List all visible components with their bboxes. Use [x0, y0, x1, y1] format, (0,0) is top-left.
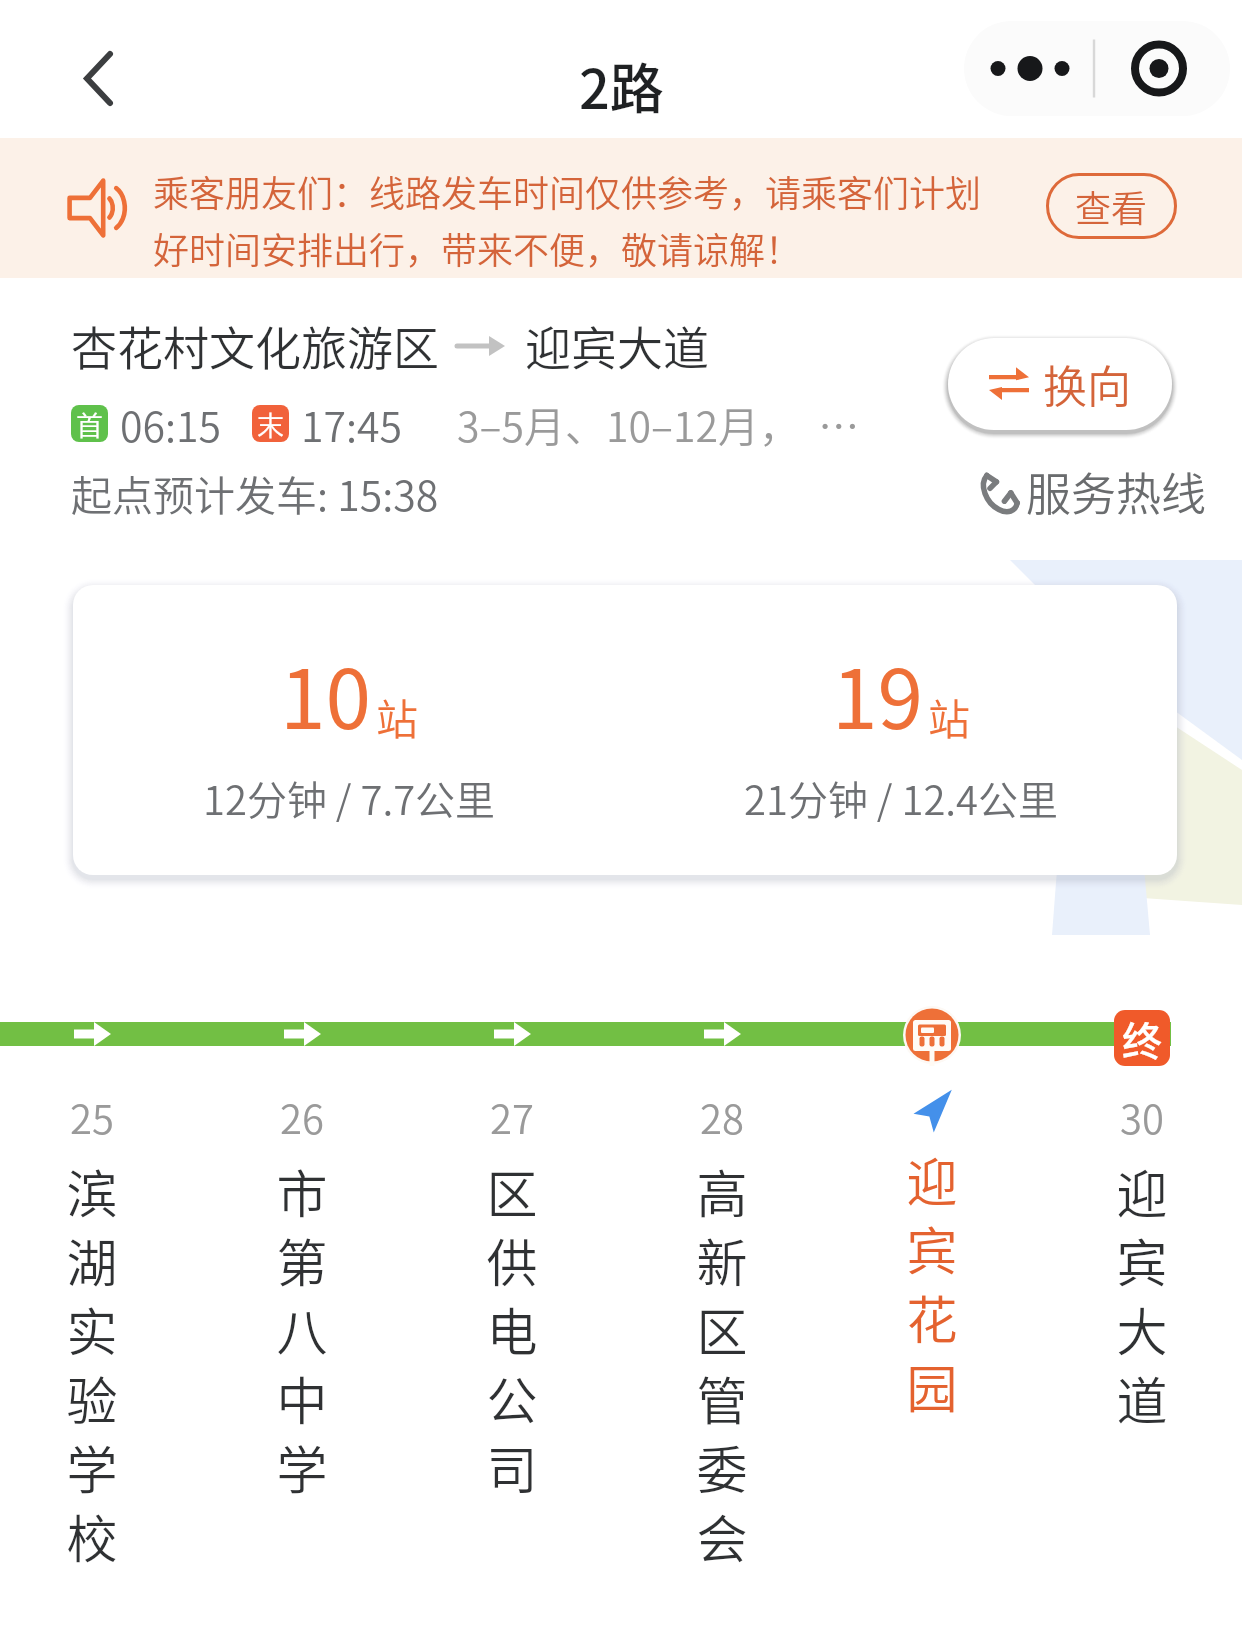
staticText: 乘客朋友们：线路发车时间仅供参考，请乘客们计划好时间安排出行，带来不便，敬请谅解… — [153, 165, 999, 275]
staticText: 19 — [832, 634, 924, 753]
staticText: 滨 湖 实 验 学 校 — [66, 1154, 118, 1573]
button[interactable]: Back — [62, 30, 134, 126]
staticText: 换向 — [1043, 352, 1131, 416]
staticText: 26 — [280, 1088, 324, 1146]
button[interactable]: 30 — [1042, 1088, 1242, 1435]
staticText: 28 — [700, 1088, 744, 1146]
staticText: 末 — [257, 405, 284, 442]
staticText: 2路 — [579, 46, 664, 124]
staticText: 迎 宾 大 道 — [1116, 1154, 1168, 1435]
staticText: 06:15 — [120, 394, 222, 453]
staticText: 查看 — [1075, 180, 1148, 232]
staticText: 21分钟 / 12.4公里 — [744, 769, 1059, 827]
button[interactable]: 26 — [202, 1088, 402, 1504]
staticText: 首 — [76, 405, 103, 442]
button[interactable]: 迎 宾 花 园 — [832, 1088, 1032, 1423]
button[interactable]: 19 — [625, 585, 1177, 875]
staticText: 10 — [280, 634, 372, 753]
staticText: 市 第 八 中 学 — [276, 1154, 328, 1504]
button[interactable]: 27 — [412, 1088, 612, 1504]
staticText: 3–5月、10–12月， … — [457, 394, 860, 453]
staticText: 27 — [490, 1088, 534, 1146]
button[interactable]: 25 — [0, 1088, 192, 1573]
staticText: 17:45 — [301, 394, 403, 453]
button[interactable]: 10 — [73, 585, 625, 875]
button[interactable]: 查看 — [1046, 173, 1177, 239]
staticText: 终 — [1122, 1010, 1162, 1066]
staticText: 25 — [70, 1088, 114, 1146]
staticText: 高 新 区 管 委 会 — [696, 1154, 748, 1573]
button[interactable]: 换向 — [948, 338, 1172, 430]
staticText: 起点预计发车: 15:38 — [71, 463, 439, 522]
staticText: 杏花村文化旅游区 — [71, 312, 439, 379]
staticText: 12分钟 / 7.7公里 — [203, 769, 496, 827]
button[interactable]: Terminus — [1114, 1010, 1170, 1066]
staticText: 区 供 电 公 司 — [486, 1154, 538, 1504]
staticText: 迎宾大道 — [525, 312, 709, 379]
staticText: 站 — [376, 686, 419, 747]
button[interactable]: Current stop — [892, 995, 972, 1075]
staticText: 服务热线 — [1026, 459, 1207, 524]
staticText: 站 — [928, 686, 971, 747]
button[interactable]: 服务热线 — [978, 459, 1207, 524]
button[interactable]: More options — [964, 21, 1230, 116]
staticText: 30 — [1120, 1088, 1164, 1146]
button[interactable]: 28 — [622, 1088, 822, 1573]
staticText: 迎 宾 花 园 — [906, 1142, 958, 1423]
